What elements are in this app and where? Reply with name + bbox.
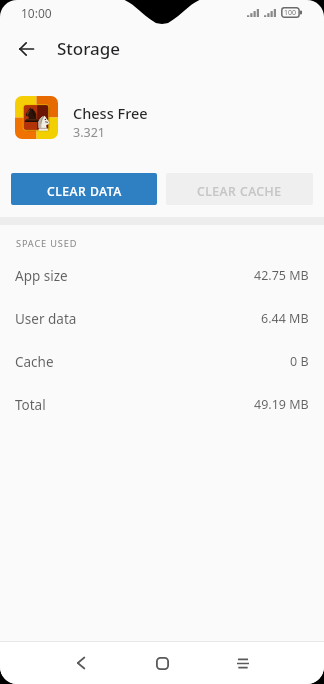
- button[interactable]: Cache: [0, 340, 324, 383]
- button[interactable]: Home: [135, 642, 189, 684]
- button[interactable]: CLEAR DATA: [11, 173, 157, 205]
- staticText: App size: [15, 267, 68, 285]
- button[interactable]: CLEAR CACHE: [166, 173, 313, 205]
- staticText: 3.321: [73, 124, 105, 141]
- staticText: SPACE USED: [16, 237, 78, 250]
- button[interactable]: Recent apps: [216, 642, 270, 684]
- staticText: Total: [15, 396, 46, 414]
- staticText: 0 B: [290, 353, 309, 370]
- staticText: User data: [15, 310, 77, 328]
- button[interactable]: User data: [0, 297, 324, 340]
- staticText: 10:00: [21, 5, 52, 21]
- staticText: 6.44 MB: [261, 310, 309, 327]
- staticText: Chess Free: [73, 103, 148, 123]
- button[interactable]: Total: [0, 383, 324, 426]
- staticText: CLEAR DATA: [47, 183, 122, 200]
- button[interactable]: Back: [2, 25, 50, 73]
- staticText: 100: [284, 8, 297, 18]
- staticText: 49.19 MB: [254, 396, 309, 413]
- staticText: Cache: [15, 353, 54, 371]
- staticText: Storage: [57, 37, 121, 60]
- staticText: CLEAR CACHE: [197, 183, 282, 200]
- button[interactable]: App size: [0, 254, 324, 297]
- button[interactable]: Back: [54, 642, 108, 684]
- staticText: 42.75 MB: [254, 267, 309, 284]
